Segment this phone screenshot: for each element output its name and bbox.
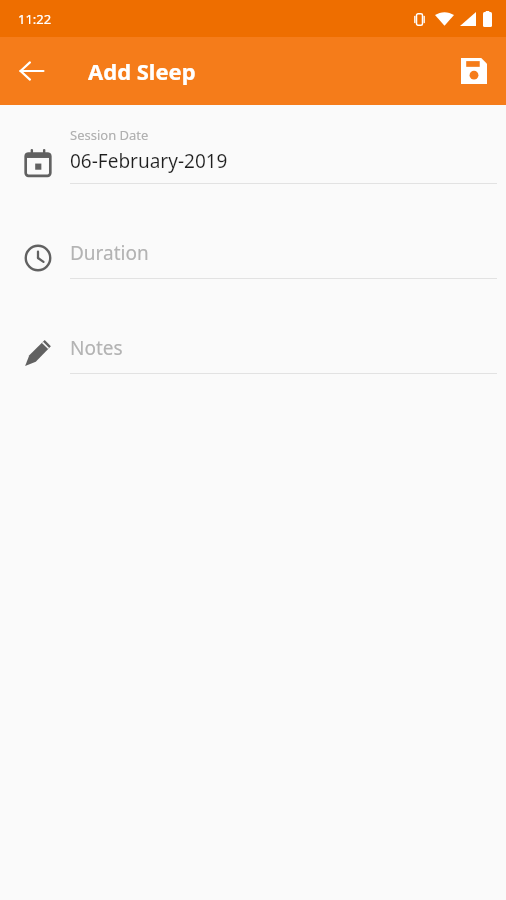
staticText: 11:22 — [18, 10, 52, 28]
staticText: Add Sleep — [88, 56, 196, 86]
button[interactable]: Notes — [0, 305, 506, 400]
staticText: Session Date — [70, 126, 149, 144]
staticText: 06-February-2019 — [70, 148, 228, 174]
button[interactable]: Duration — [0, 210, 506, 305]
staticText: Duration — [70, 240, 149, 266]
button[interactable]: Back — [8, 47, 56, 95]
button[interactable]: Save — [450, 47, 498, 95]
staticText: Notes — [70, 335, 123, 361]
button[interactable]: Session Date — [0, 115, 506, 210]
